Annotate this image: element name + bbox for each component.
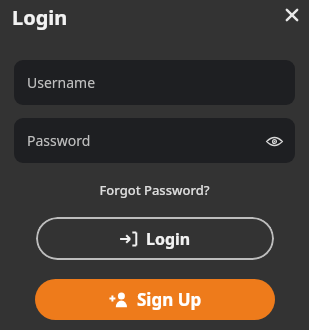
button[interactable]: Username: [14, 60, 295, 105]
button[interactable]: Close: [277, 0, 307, 30]
button[interactable]: Sign Up: [35, 279, 275, 320]
staticText: Username: [27, 73, 96, 92]
staticText: Forgot Password?: [99, 181, 210, 199]
button[interactable]: Forgot Password?: [93, 178, 216, 202]
button[interactable]: Login: [36, 217, 274, 260]
staticText: Sign Up: [137, 288, 202, 311]
button[interactable]: Show password: [260, 127, 288, 155]
staticText: Password: [27, 131, 91, 150]
button[interactable]: Password: [14, 118, 295, 163]
staticText: Login: [12, 4, 68, 31]
staticText: Login: [146, 228, 191, 250]
